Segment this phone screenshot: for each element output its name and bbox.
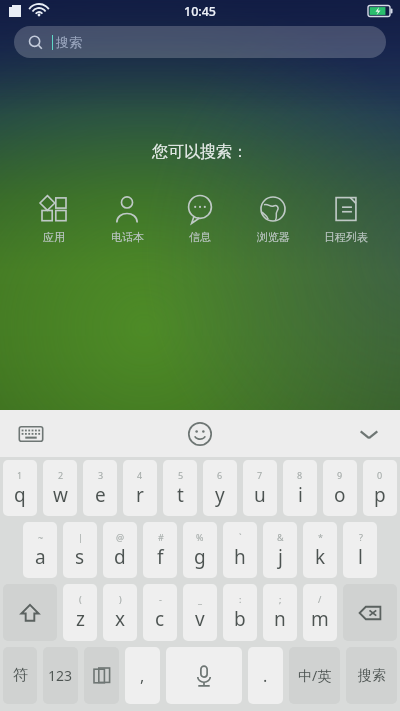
button[interactable]: 电话本 [95,192,159,246]
staticText: ~ [38,531,44,543]
staticText: u [254,482,266,508]
staticText: - [159,593,162,605]
staticText: % [196,531,204,543]
staticText: 6 [217,469,223,481]
button[interactable]: Switch layout [84,647,119,704]
button[interactable]: Voice input [166,647,242,704]
button[interactable]: 搜索 [346,647,397,704]
button[interactable]: 2 [43,460,77,516]
staticText: 8 [297,469,303,481]
staticText: 搜索 [358,667,386,685]
button[interactable]: 搜索 [14,26,386,58]
staticText: e [95,482,106,508]
staticText: 日程列表 [324,230,368,244]
button[interactable]: 1 [3,460,37,516]
button[interactable]: : [223,584,257,641]
button[interactable]: ; [263,584,297,641]
staticText: n [274,606,286,632]
button[interactable]: _ [183,584,217,641]
staticText: j [278,544,283,570]
button[interactable]: Shift [3,584,57,641]
button[interactable]: 8 [283,460,317,516]
staticText: ; [279,593,282,605]
staticText: t [177,482,184,508]
staticText: 7 [257,469,263,481]
staticText: 2 [58,469,64,481]
button[interactable]: 浏览器 [241,192,305,246]
staticText: _ [198,593,202,605]
staticText: 您可以搜索： [0,142,400,162]
button[interactable]: 7 [243,460,277,516]
button[interactable]: 应用 [22,192,86,246]
staticText: : [239,593,242,605]
button[interactable]: ) [103,584,137,641]
button[interactable]: 9 [323,460,357,516]
button[interactable]: * [303,522,337,578]
button[interactable]: Emoji [186,420,214,448]
staticText: k [315,544,326,570]
staticText: 1 [17,469,23,481]
button[interactable]: # [143,522,177,578]
staticText: 中/英 [298,666,332,685]
staticText: 符 [13,666,28,685]
staticText: h [234,544,246,570]
button[interactable]: 123 [43,647,78,704]
staticText: o [334,482,346,508]
staticText: ) [119,593,122,605]
button[interactable]: & [263,522,297,578]
staticText: 搜索 [56,34,82,50]
staticText: 4 [137,469,143,481]
button[interactable]: . [248,647,283,704]
button[interactable]: 5 [163,460,197,516]
staticText: d [114,544,126,570]
button[interactable]: 0 [363,460,397,516]
staticText: ` [239,531,242,543]
button[interactable]: | [63,522,97,578]
staticText: f [157,544,164,570]
staticText: & [277,531,284,543]
button[interactable]: Keyboard settings [18,421,44,447]
staticText: 电话本 [111,230,144,244]
staticText: 123 [48,666,73,685]
button[interactable]: 3 [83,460,117,516]
button[interactable]: Backspace [343,584,397,641]
staticText: b [234,606,246,632]
staticText: | [78,531,83,543]
staticText: c [155,606,165,632]
button[interactable]: 信息 [168,192,232,246]
staticText: , [140,665,145,687]
button[interactable]: - [143,584,177,641]
staticText: ( [79,593,82,605]
staticText: x [115,606,126,632]
staticText: l [358,544,363,570]
staticText: g [194,544,206,570]
button[interactable]: ` [223,522,257,578]
staticText: m [311,606,329,632]
button[interactable]: 中/英 [289,647,340,704]
staticText: z [76,606,85,632]
staticText: w [53,482,68,508]
button[interactable]: 6 [203,460,237,516]
button[interactable]: ~ [23,522,57,578]
button[interactable]: 4 [123,460,157,516]
button[interactable]: Keyboard settings [0,410,400,457]
button[interactable]: ( [63,584,97,641]
button[interactable]: @ [103,522,137,578]
staticText: # [158,531,164,543]
button[interactable]: ? [343,522,377,578]
staticText: 5 [178,469,184,481]
button[interactable]: Hide keyboard [356,421,382,447]
staticText: 9 [337,469,343,481]
staticText: y [215,482,225,508]
button[interactable]: 日程列表 [314,192,378,246]
button[interactable]: / [303,584,337,641]
staticText: r [136,482,144,508]
button[interactable]: , [125,647,160,704]
button[interactable]: % [183,522,217,578]
staticText: v [195,606,205,632]
staticText: 0 [377,469,383,481]
staticText: . [263,665,268,687]
staticText: p [374,482,386,508]
button[interactable]: 符 [3,647,37,704]
staticText: / [318,593,322,605]
